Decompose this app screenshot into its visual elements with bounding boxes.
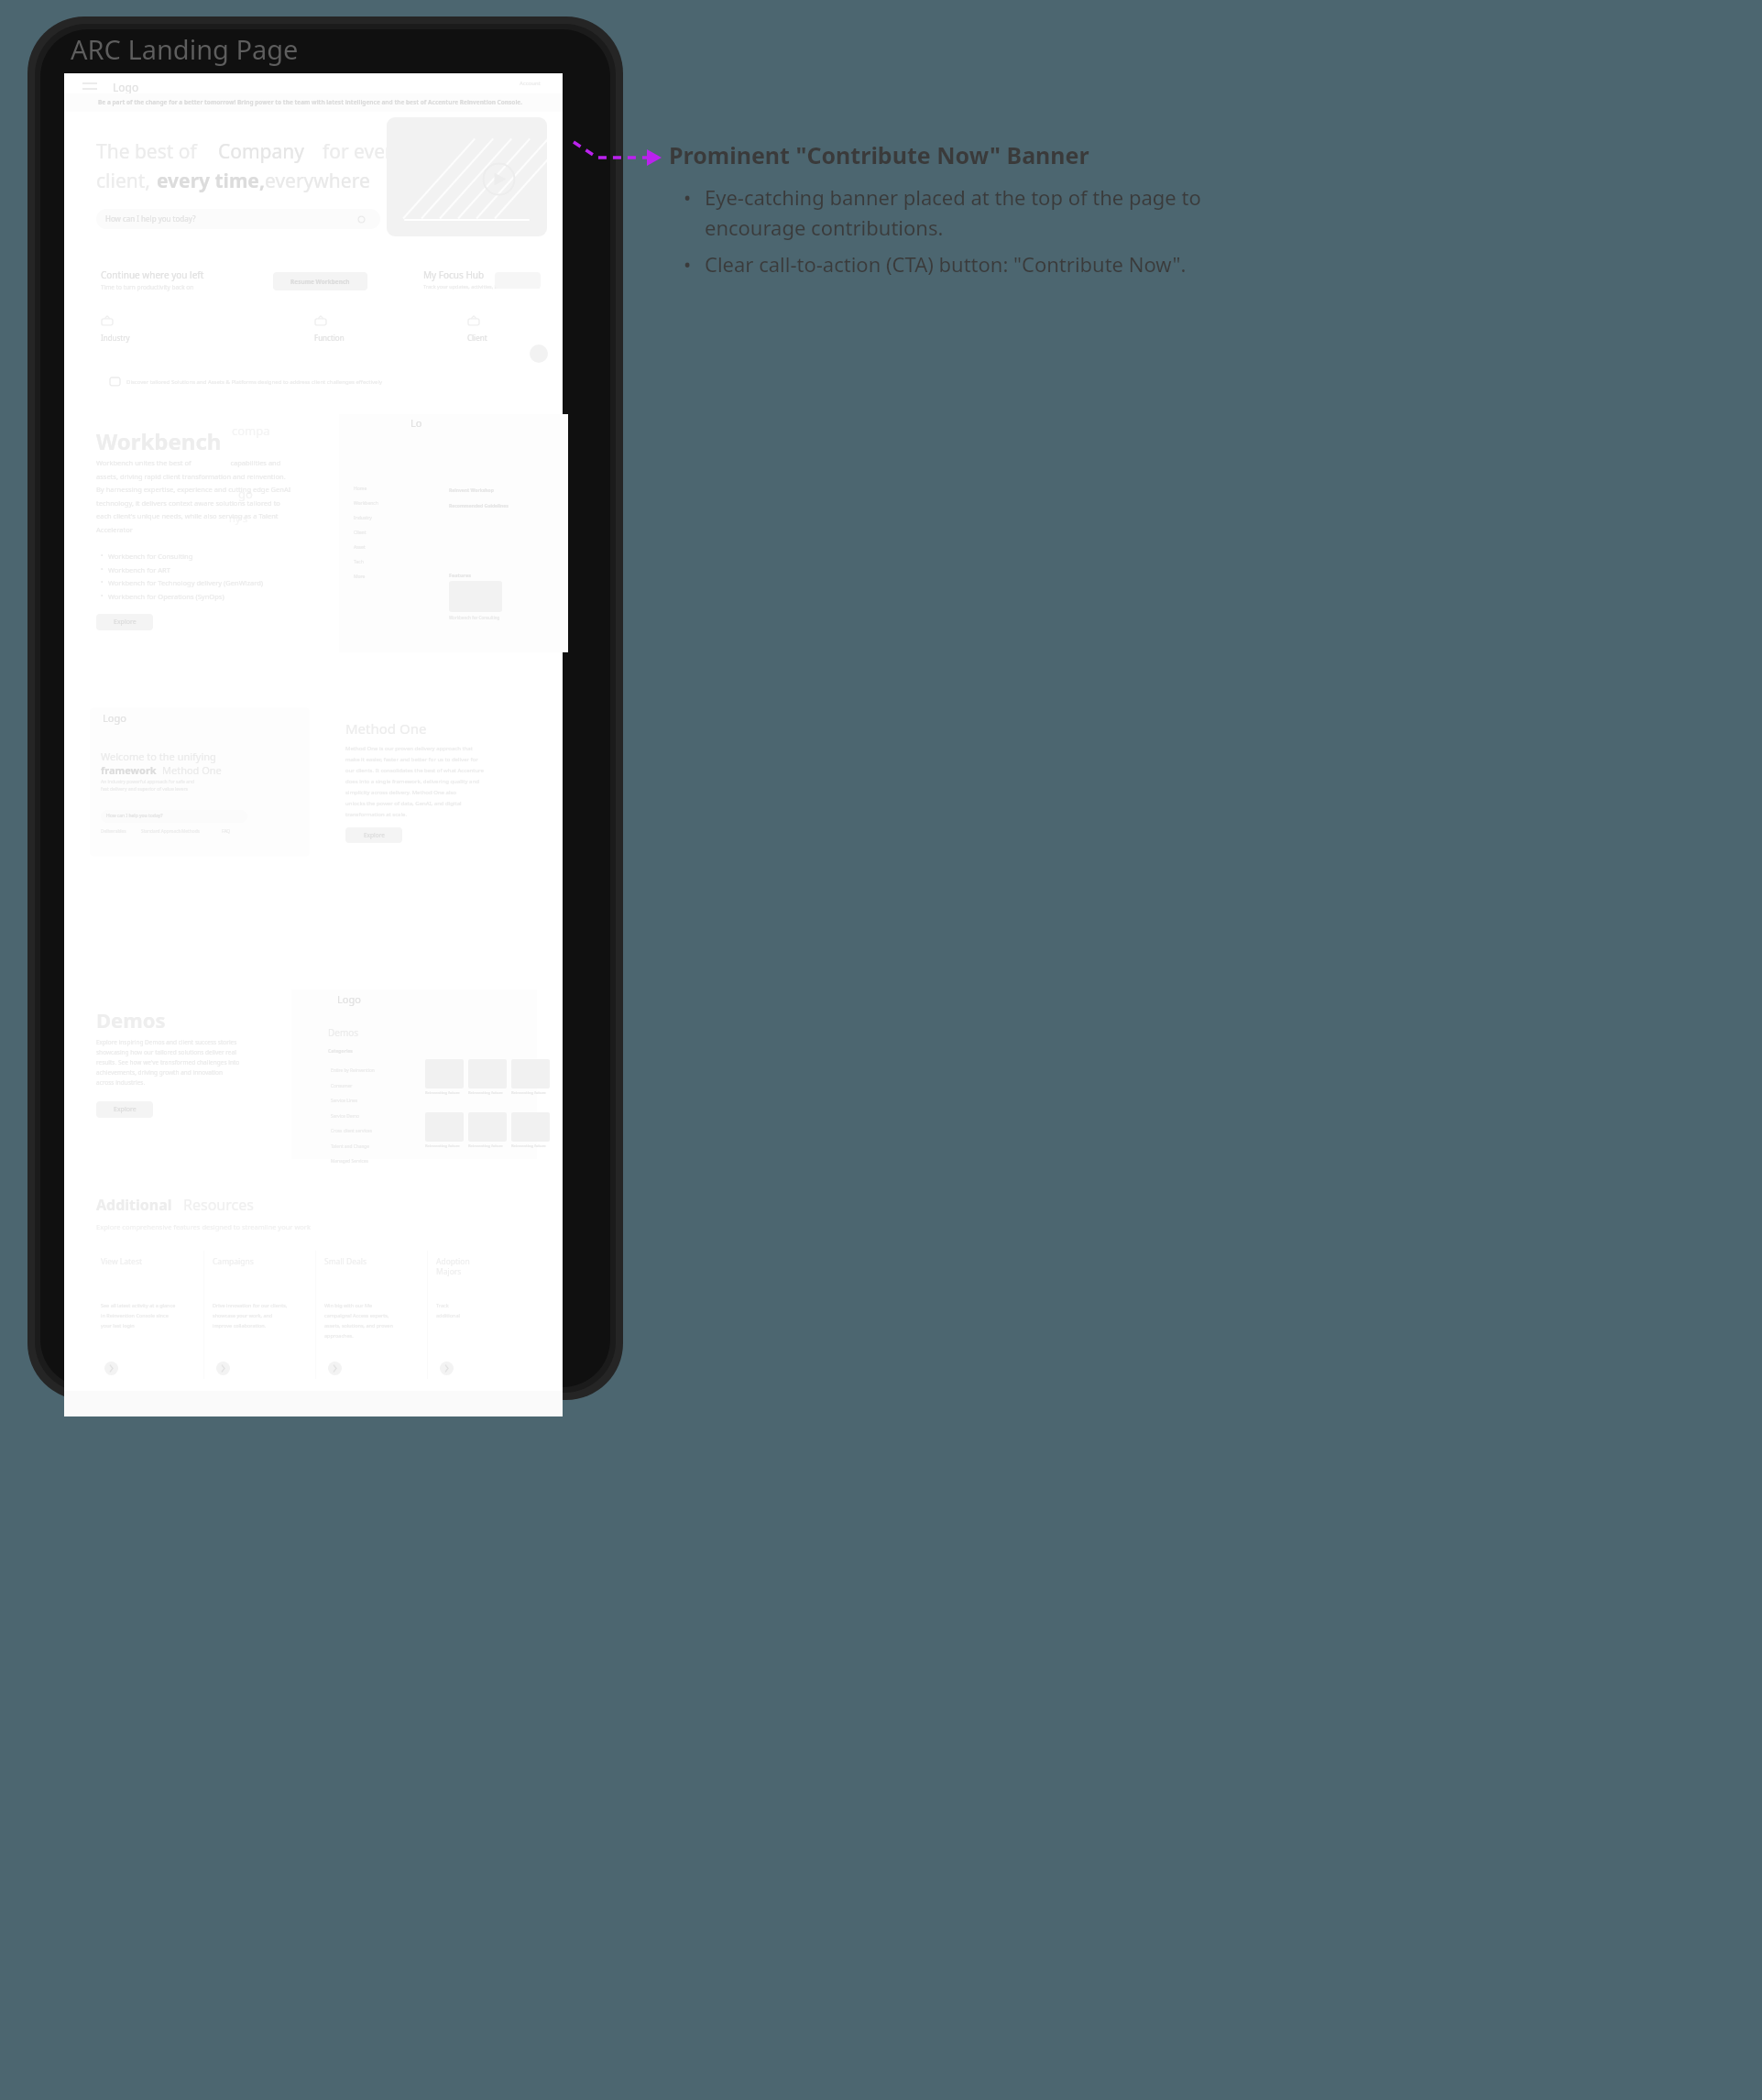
staticText: Home: [354, 486, 367, 492]
staticText: Majors: [436, 1266, 462, 1277]
staticText: your last login: [101, 1322, 135, 1329]
staticText: transformation at scale.: [345, 811, 407, 818]
staticText: Explore: [114, 1105, 137, 1114]
staticText: Continue where you left: [101, 268, 204, 281]
staticText: Company: [218, 138, 304, 165]
button[interactable]: Open Adoption: [440, 1362, 454, 1375]
button[interactable]: Explore: [96, 1101, 153, 1118]
staticText: campaigns! Access experts,: [324, 1312, 389, 1318]
staticText: Reinventing future: [425, 1143, 460, 1148]
staticText: Clear call-to-action (CTA) button: "Cont…: [705, 250, 1187, 278]
button[interactable]: Explore: [96, 614, 153, 630]
staticText: Features: [449, 572, 471, 578]
staticText: An industry powerful approach for safe a…: [101, 779, 195, 785]
staticText: ny's: [229, 511, 248, 525]
staticText: View Latest: [101, 1256, 143, 1267]
staticText: Demos: [96, 1006, 166, 1034]
staticText: Methods: [181, 828, 200, 835]
staticText: Talent and Change: [331, 1143, 370, 1150]
staticText: Workbench for Technology delivery (GenWi…: [108, 578, 264, 587]
staticText: Logo: [113, 80, 139, 94]
staticText: Workbench for ART: [108, 565, 170, 574]
staticText: •: [684, 183, 692, 211]
staticText: Standard Approach: [141, 828, 181, 835]
staticText: Prominent "Contribute Now" Banner: [669, 139, 1089, 170]
staticText: make it easier, faster and better for us…: [345, 756, 478, 763]
staticText: ARC Landing Page: [71, 31, 299, 67]
staticText: Discover tailored Solutions and Assets &…: [126, 378, 383, 386]
staticText: Function: [314, 333, 345, 343]
staticText: Method One is our proven delivery approa…: [345, 745, 473, 752]
staticText: Explore inspiring Demos and client succe…: [96, 1038, 237, 1046]
button[interactable]: Open Small Deals: [328, 1362, 342, 1375]
staticText: showcasing how our tailored solutions de…: [96, 1048, 236, 1056]
staticText: Explore comprehensive features designed …: [96, 1222, 311, 1231]
staticText: unlocks the power of data, GenAI, and di…: [345, 800, 462, 807]
staticText: Eye-catching banner placed at the top of…: [705, 183, 1237, 241]
button[interactable]: Industry: [101, 314, 174, 343]
button[interactable]: Account: [520, 79, 560, 92]
staticText: By harnessing expertise, experience and …: [96, 485, 291, 494]
staticText: Welcome to the unifying: [101, 749, 216, 763]
staticText: Lo: [410, 416, 422, 430]
staticText: Drive innovation for our clients,: [213, 1302, 288, 1308]
staticText: Service Lines: [331, 1098, 357, 1104]
button[interactable]: Function: [314, 314, 388, 343]
button[interactable]: [96, 209, 380, 229]
button[interactable]: Search: [530, 345, 548, 363]
button[interactable]: [101, 810, 247, 823]
staticText: Service Demo: [331, 1113, 359, 1120]
staticText: •: [101, 552, 104, 561]
staticText: •: [101, 592, 104, 601]
staticText: Workbench for Operations (SynOps): [108, 592, 224, 601]
button[interactable]: Play video: [387, 117, 547, 236]
staticText: Recommended Guidelines: [449, 503, 509, 509]
staticText: Demos: [328, 1026, 359, 1039]
staticText: Reinventing future: [425, 1090, 460, 1095]
staticText: Reinventing future: [511, 1090, 546, 1095]
staticText: achievements, driving growth and innovat…: [96, 1068, 223, 1077]
staticText: additional: [436, 1312, 460, 1318]
staticText: approaches.: [324, 1332, 354, 1339]
staticText: FAQ: [222, 828, 231, 835]
button[interactable]: Resume Workbench: [273, 272, 367, 290]
staticText: •: [101, 578, 104, 587]
staticText: improve collaboration.: [213, 1322, 267, 1329]
button[interactable]: Open Campaigns: [216, 1362, 230, 1375]
staticText: Industry: [354, 515, 372, 521]
button[interactable]: Client: [467, 314, 541, 343]
staticText: Workbench: [96, 426, 222, 456]
staticText: Reinventing future: [511, 1143, 546, 1148]
staticText: Consumer: [331, 1083, 353, 1089]
staticText: each client's unique needs, while also s…: [96, 511, 279, 520]
staticText: Additional: [96, 1195, 172, 1215]
button[interactable]: [64, 93, 563, 112]
staticText: technology, it delivers context aware so…: [96, 498, 280, 508]
staticText: Industry: [101, 333, 130, 343]
staticText: framework: [101, 763, 157, 777]
staticText: •: [101, 565, 104, 574]
staticText: Track: [436, 1302, 449, 1308]
staticText: does into a single framework, delivering…: [345, 778, 479, 785]
staticText: Account: [520, 80, 541, 87]
staticText: Small Deals: [324, 1256, 367, 1267]
staticText: across industries.: [96, 1078, 146, 1087]
staticText: Cross client services: [331, 1128, 373, 1134]
staticText: Client: [354, 530, 367, 536]
staticText: for every: [323, 138, 403, 165]
button[interactable]: Explore: [345, 827, 402, 843]
staticText: Explore: [364, 831, 385, 839]
staticText: Workbench for Consulting: [108, 552, 193, 561]
button[interactable]: Open View Latest: [104, 1362, 118, 1375]
button[interactable]: Contribute Now: [510, 98, 520, 107]
staticText: My Focus Hub: [423, 268, 485, 281]
staticText: Method One: [345, 719, 427, 738]
button[interactable]: Menu: [79, 79, 103, 99]
